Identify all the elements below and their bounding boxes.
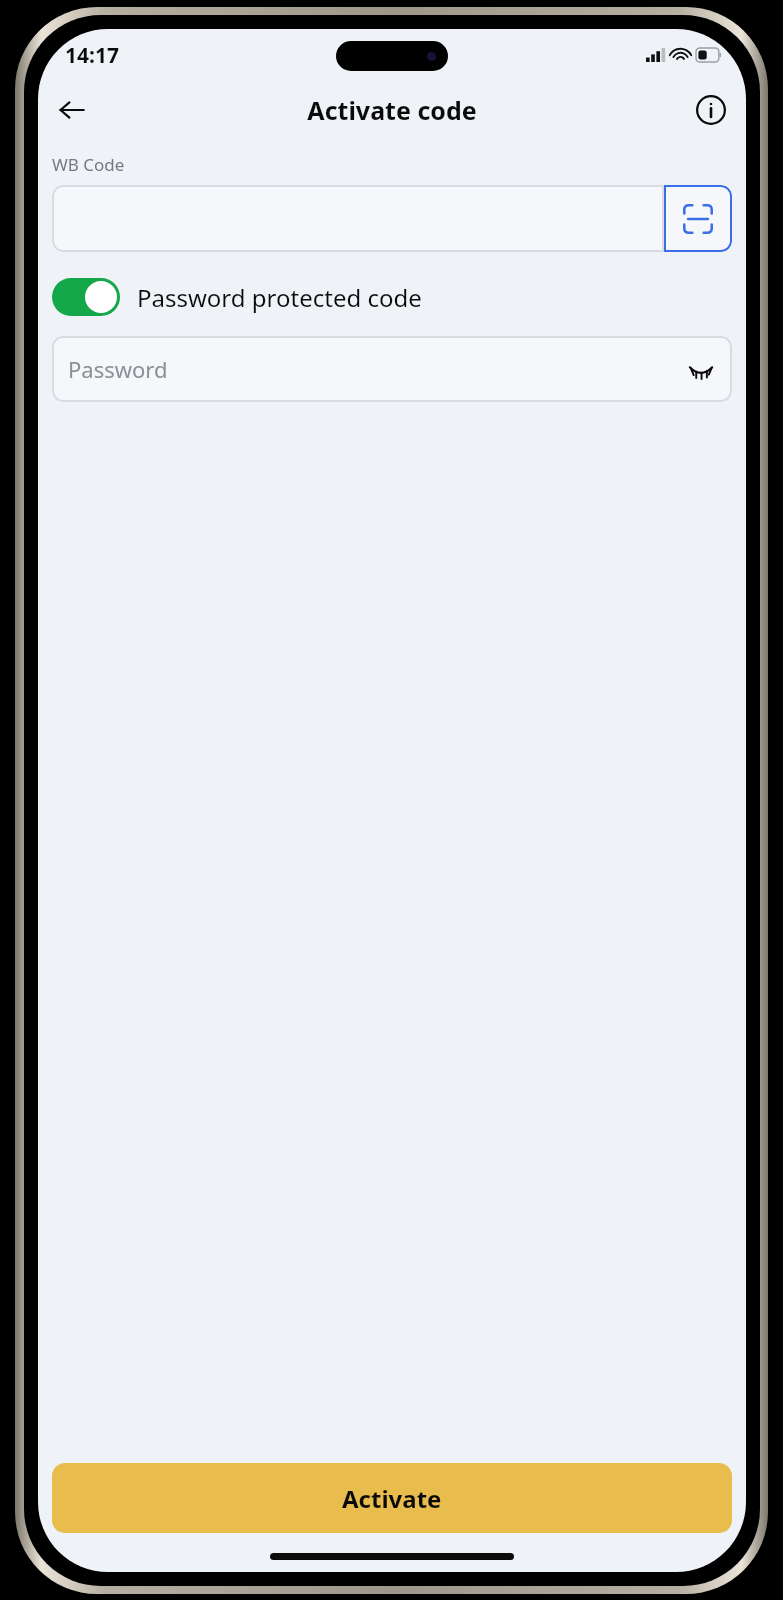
staticText: Password (68, 354, 168, 384)
button[interactable]: Back (46, 84, 98, 136)
button[interactable]: Password (52, 336, 732, 402)
button[interactable]: Show password (680, 348, 722, 390)
staticText: WB Code (52, 153, 125, 176)
staticText: Activate code (307, 93, 477, 127)
staticText: 14:17 (65, 41, 119, 70)
button[interactable] (52, 185, 664, 252)
staticText: Activate (342, 1482, 442, 1515)
button[interactable]: Scan code (664, 185, 732, 252)
staticText: Password protected code (137, 281, 422, 314)
button[interactable]: Info (686, 85, 736, 135)
button[interactable]: Password protected code (52, 278, 732, 316)
button[interactable]: Activate (52, 1463, 732, 1533)
